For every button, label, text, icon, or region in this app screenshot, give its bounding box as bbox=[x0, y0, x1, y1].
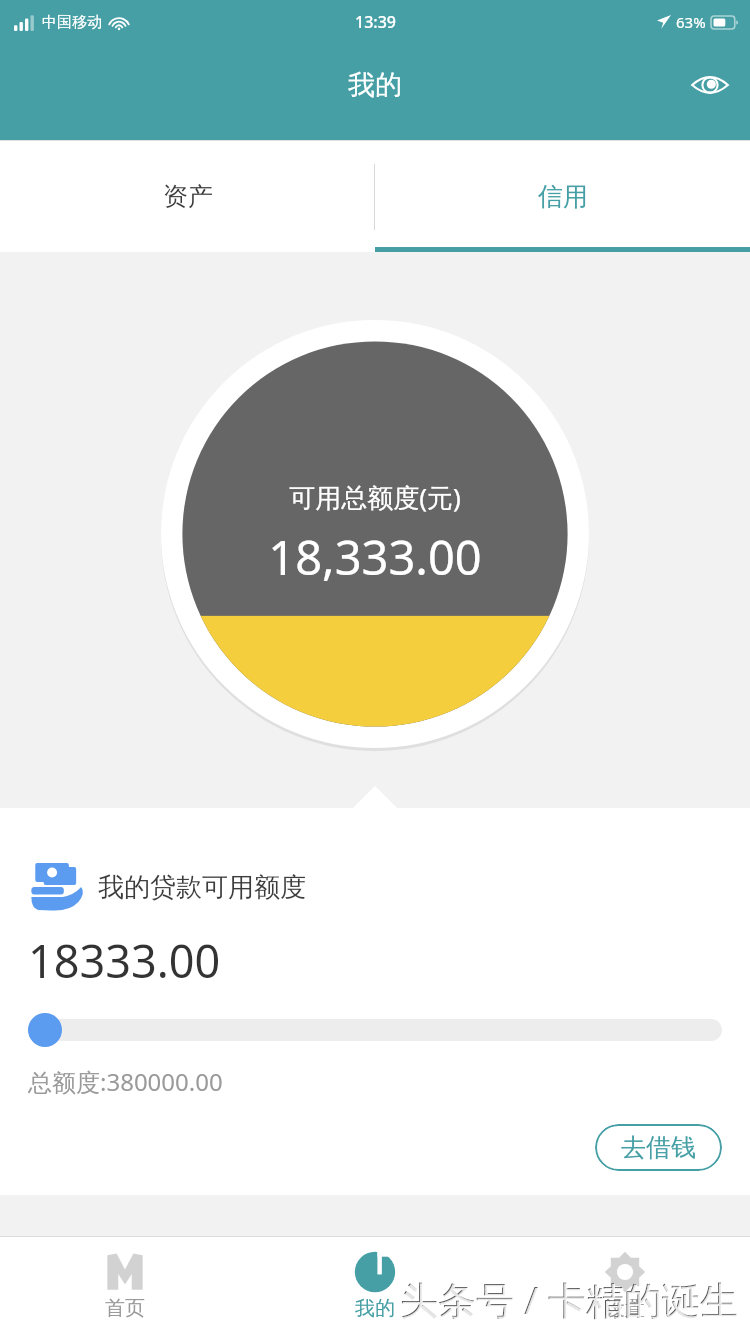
button[interactable]: 我的 bbox=[250, 1237, 500, 1334]
staticText: 我的贷款可用额度 bbox=[98, 871, 306, 904]
staticText: 中国移动 bbox=[42, 13, 102, 32]
staticText: 头条号 / 卡精的诞生 bbox=[400, 1273, 738, 1325]
staticText: 可用总额度(元) bbox=[289, 479, 461, 515]
staticText: 18,333.00 bbox=[268, 525, 482, 589]
staticText: 我的 bbox=[348, 68, 402, 102]
staticText: 信用 bbox=[538, 181, 588, 212]
staticText: 13:39 bbox=[355, 11, 396, 33]
staticText: 资产 bbox=[163, 181, 213, 212]
button[interactable]: Toggle amount visibility bbox=[682, 57, 738, 113]
staticText: 63% bbox=[676, 12, 706, 32]
button[interactable]: 设置 bbox=[500, 1237, 750, 1334]
staticText: 我的 bbox=[355, 1296, 395, 1321]
button[interactable]: 首页 bbox=[0, 1237, 250, 1334]
staticText: 总额度:380000.00 bbox=[28, 1065, 223, 1098]
staticText: 去借钱 bbox=[621, 1132, 696, 1163]
button[interactable]: 信用 bbox=[375, 141, 750, 252]
staticText: 首页 bbox=[105, 1296, 145, 1321]
staticText: 头条号 / 卡精的诞生 bbox=[401, 1274, 739, 1326]
button[interactable]: 去借钱 bbox=[595, 1124, 722, 1171]
staticText: 设置 bbox=[605, 1296, 645, 1321]
button[interactable]: 资产 bbox=[0, 141, 375, 252]
staticText: 18333.00 bbox=[28, 930, 221, 991]
